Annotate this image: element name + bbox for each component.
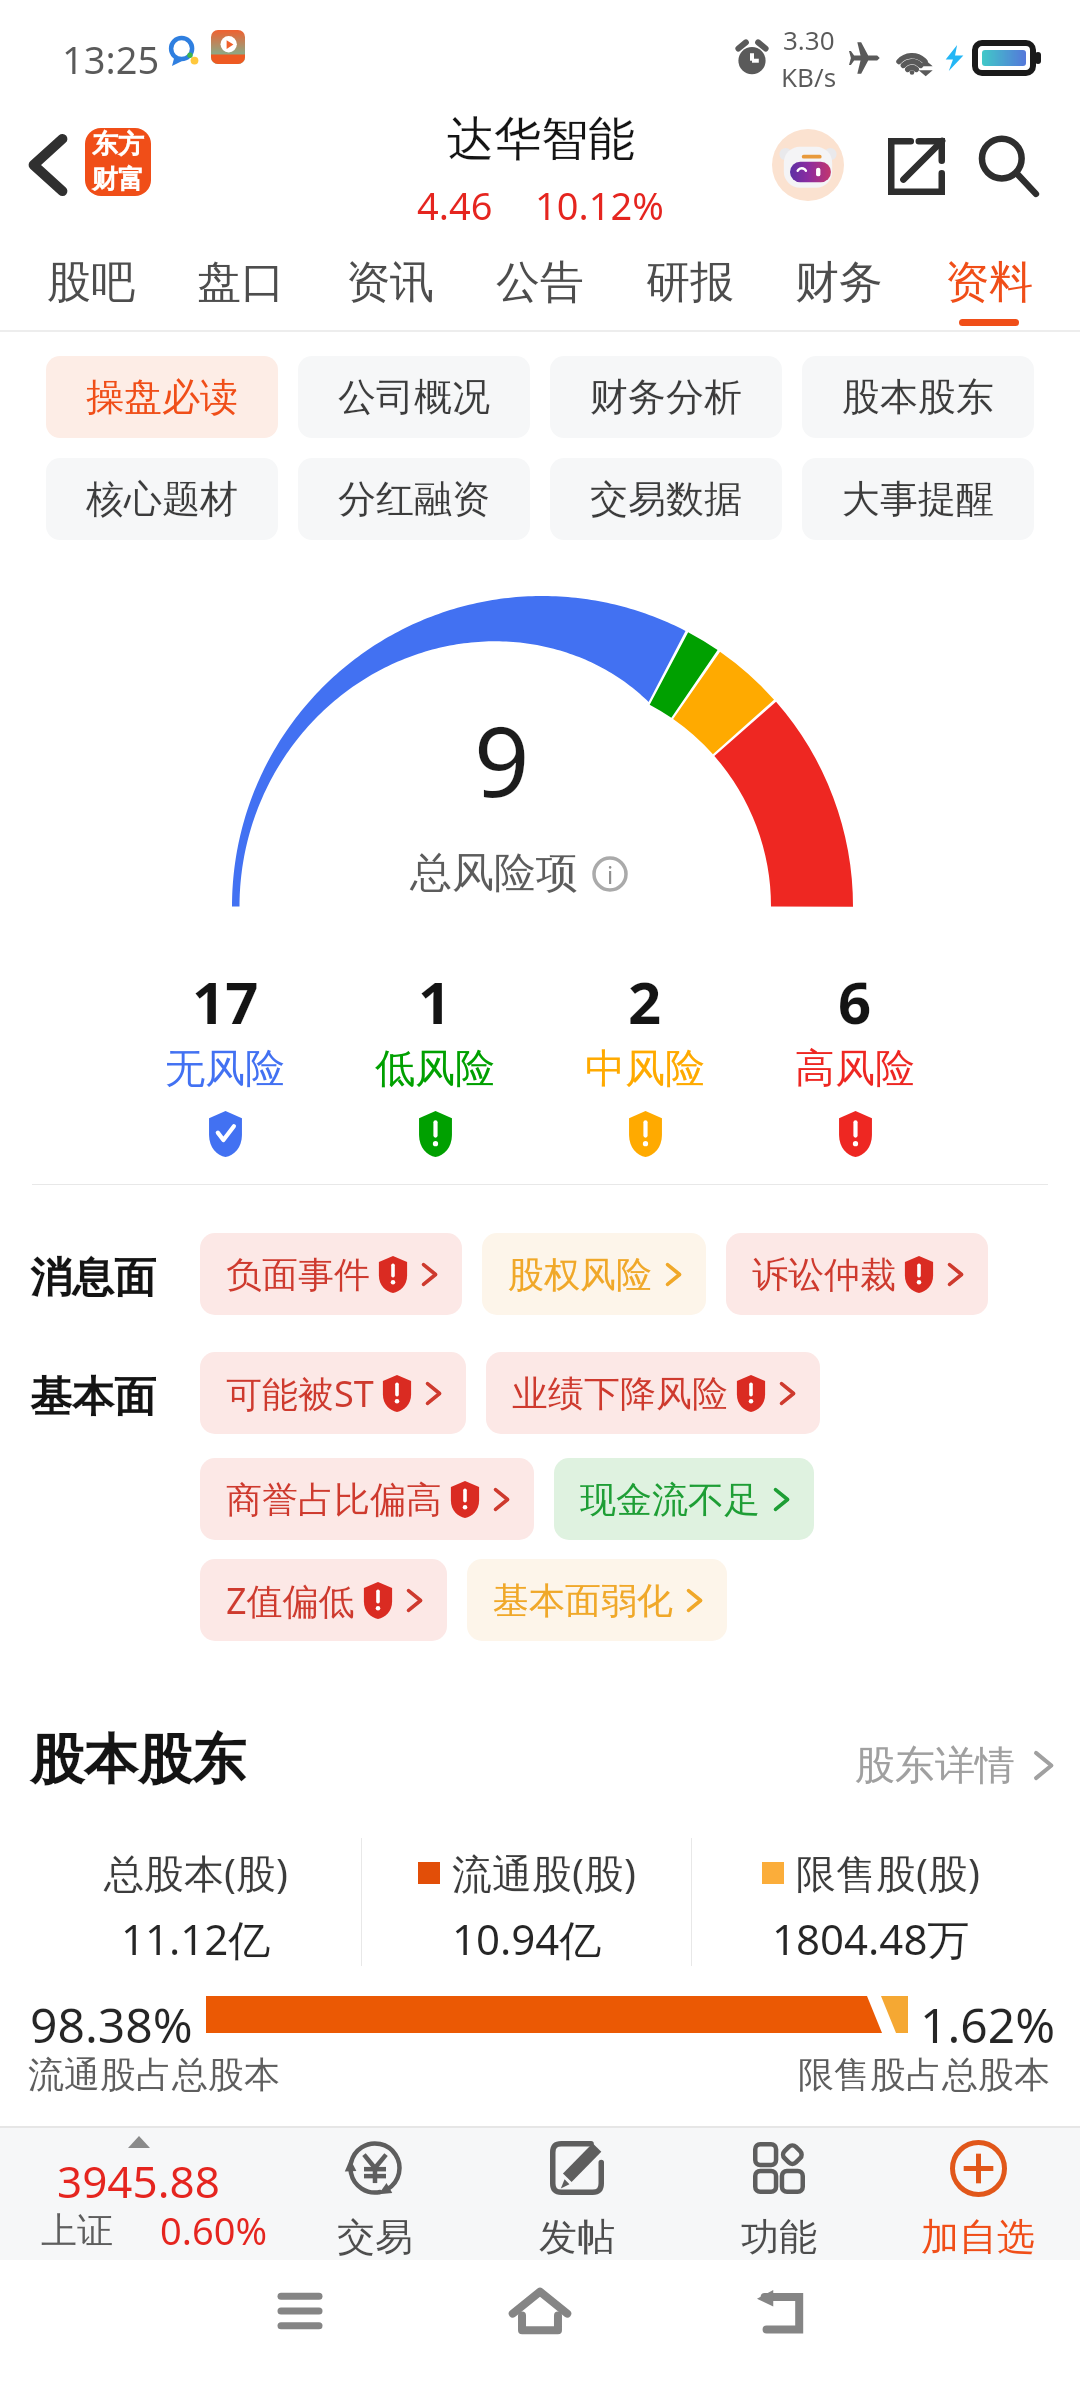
staticText: 3945.88 <box>57 2151 220 2211</box>
staticText: 1 <box>418 962 452 1041</box>
staticText: 核心题材 <box>86 475 238 523</box>
staticText: 总风险项 <box>410 847 578 900</box>
button[interactable]: 负面事件 <box>200 1233 462 1315</box>
staticText: 财富 <box>92 163 144 196</box>
button[interactable]: 商誉占比偏高 <box>200 1458 534 1540</box>
staticText: 9 <box>474 693 530 825</box>
staticText: 消息面 <box>30 1252 156 1305</box>
staticText: 3.30 <box>783 22 835 57</box>
staticText: 公告 <box>496 255 584 310</box>
staticText: 功能 <box>741 2213 817 2260</box>
staticText: 1.62% <box>920 1992 1056 2057</box>
button[interactable]: 盘口 <box>186 230 296 326</box>
staticText: 分红融资 <box>338 475 490 523</box>
button[interactable]: 可能被ST <box>200 1352 466 1434</box>
staticText: i <box>607 858 614 891</box>
staticText: 资料 <box>945 255 1033 310</box>
staticText: 诉讼仲裁 <box>752 1252 896 1297</box>
staticText: 无风险 <box>165 1043 285 1093</box>
button[interactable]: 分红融资 <box>298 458 530 540</box>
staticText: 低风险 <box>375 1043 495 1093</box>
staticText: 0.60% <box>160 2204 267 2256</box>
staticText: 13:25 <box>62 33 160 85</box>
staticText: 高风险 <box>795 1043 915 1093</box>
button[interactable]: 资讯 <box>335 230 445 326</box>
button[interactable]: Share <box>880 130 952 202</box>
staticText: 流通股占总股本 <box>28 2052 280 2097</box>
button[interactable]: 股吧 <box>36 230 146 326</box>
button[interactable]: Recent apps <box>252 2263 348 2359</box>
staticText: 资讯 <box>346 255 434 310</box>
staticText: 交易 <box>337 2213 413 2260</box>
staticText: 10.12% <box>535 179 664 231</box>
staticText: Z值偏低 <box>226 1576 355 1625</box>
staticText: 6 <box>838 962 872 1041</box>
button[interactable]: 功能 <box>679 2126 879 2260</box>
button[interactable]: Back <box>4 121 92 209</box>
button[interactable]: Shanghai index <box>20 2132 300 2256</box>
button[interactable]: 业绩下降风险 <box>486 1352 820 1434</box>
button[interactable]: 股本股东 <box>802 356 1034 438</box>
button[interactable]: 基本面弱化 <box>467 1559 727 1641</box>
staticText: 研报 <box>646 255 734 310</box>
button[interactable]: 研报 <box>635 230 745 326</box>
button[interactable]: 交易数据 <box>550 458 782 540</box>
staticText: 可能被ST <box>226 1369 374 1418</box>
staticText: 达华智能 <box>447 110 635 169</box>
staticText: 4.46 <box>417 179 493 231</box>
staticText: 基本面弱化 <box>493 1578 673 1623</box>
button[interactable]: 加自选 <box>878 2126 1078 2260</box>
button[interactable]: 财务 <box>784 230 894 326</box>
button[interactable]: Search <box>972 130 1044 202</box>
button[interactable]: East Money <box>85 128 151 196</box>
button[interactable]: 交易 <box>275 2126 475 2260</box>
staticText: KB/s <box>781 59 837 94</box>
staticText: 业绩下降风险 <box>512 1371 728 1416</box>
staticText: 交易数据 <box>590 475 742 523</box>
button[interactable]: 发帖 <box>477 2126 677 2260</box>
staticText: 财务 <box>795 255 883 310</box>
button[interactable]: 核心题材 <box>46 458 278 540</box>
staticText: 商誉占比偏高 <box>226 1477 442 1522</box>
staticText: 基本面 <box>30 1371 156 1424</box>
button[interactable]: 诉讼仲裁 <box>726 1233 988 1315</box>
button[interactable]: Z值偏低 <box>200 1559 447 1641</box>
staticText: 限售股(股) <box>796 1845 980 1900</box>
staticText: 操盘必读 <box>86 373 238 421</box>
staticText: 限售股占总股本 <box>798 2052 1050 2097</box>
button[interactable]: 大事提醒 <box>802 458 1034 540</box>
staticText: 总股本(股) <box>104 1845 288 1900</box>
staticText: 盘口 <box>197 255 285 310</box>
staticText: 股本股东 <box>30 1726 246 1794</box>
button[interactable]: 现金流不足 <box>554 1458 814 1540</box>
staticText: 股吧 <box>47 255 135 310</box>
button[interactable]: 财务分析 <box>550 356 782 438</box>
staticText: 上证 <box>41 2208 113 2253</box>
button[interactable]: 资料 <box>934 230 1044 326</box>
staticText: 公司概况 <box>338 373 490 421</box>
button[interactable]: 股东详情 <box>855 1740 1057 1790</box>
staticText: 股权风险 <box>508 1252 652 1297</box>
staticText: 17 <box>192 962 259 1041</box>
staticText: 财务分析 <box>590 373 742 421</box>
button[interactable]: Home <box>492 2263 588 2359</box>
staticText: 流通股(股) <box>452 1845 636 1900</box>
staticText: 东方 <box>92 128 144 161</box>
staticText: 98.38% <box>30 1992 193 2057</box>
staticText: 10.94亿 <box>452 1910 602 1967</box>
button[interactable]: 公司概况 <box>298 356 530 438</box>
staticText: 中风险 <box>585 1043 705 1093</box>
staticText: 现金流不足 <box>580 1477 760 1522</box>
staticText: 11.12亿 <box>121 1910 271 1967</box>
button[interactable]: AI assistant <box>772 129 844 201</box>
button[interactable]: Back <box>732 2263 828 2359</box>
button[interactable]: 操盘必读 <box>46 356 278 438</box>
staticText: 负面事件 <box>226 1252 370 1297</box>
staticText: 股东详情 <box>855 1740 1015 1790</box>
staticText: 发帖 <box>539 2213 615 2260</box>
button[interactable]: 公告 <box>485 230 595 326</box>
staticText: 加自选 <box>921 2213 1035 2260</box>
staticText: 2 <box>628 962 662 1041</box>
button[interactable]: 股权风险 <box>482 1233 706 1315</box>
staticText: 股本股东 <box>842 373 994 421</box>
